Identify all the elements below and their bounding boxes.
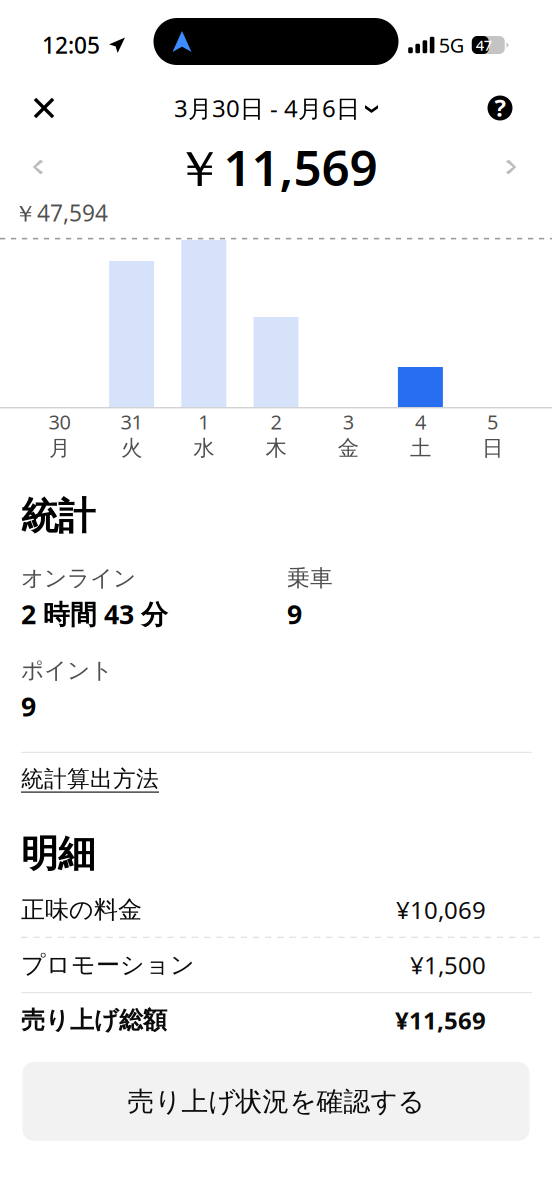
button[interactable]: 売り上げ状況を確認する [22, 1062, 529, 1141]
staticText: 乗車 [287, 564, 333, 592]
button[interactable]: Previous week [16, 145, 60, 189]
staticText: 統計 [21, 493, 95, 539]
staticText: 土 [410, 435, 431, 461]
staticText: 金 [338, 435, 359, 461]
staticText: ポイント [21, 656, 113, 684]
staticText: 売り上げ総額 [21, 1005, 167, 1035]
button[interactable]: Next week [492, 145, 536, 189]
staticText: 4 [415, 408, 426, 435]
staticText: 2 [270, 408, 281, 435]
button[interactable]: 3月30日 - 4月6日 [174, 86, 378, 130]
staticText: 売り上げ状況を確認する [127, 1085, 424, 1118]
staticText: 47 [476, 35, 492, 55]
staticText: 統計算出方法 [21, 765, 159, 793]
staticText: 3月30日 - 4月6日 [174, 92, 360, 124]
staticText: 日 [482, 435, 503, 461]
staticText: ￥11,569 [174, 134, 377, 200]
staticText: ¥10,069 [396, 894, 486, 926]
staticText: ¥1,500 [410, 949, 486, 981]
staticText: 5G [439, 32, 465, 58]
staticText: 30 [48, 408, 70, 435]
button[interactable]: 統計算出方法 [21, 753, 159, 797]
staticText: 正味の料金 [21, 895, 142, 924]
staticText: 3 [343, 408, 354, 435]
staticText: 明細 [21, 831, 95, 877]
staticText: 31 [121, 408, 143, 435]
staticText: 9 [21, 688, 36, 724]
button[interactable]: Help [478, 86, 522, 130]
staticText: 5 [487, 408, 498, 435]
button[interactable]: プロモーション [0, 938, 552, 992]
staticText: プロモーション [21, 950, 195, 980]
staticText: 1 [198, 408, 209, 435]
staticText: ? [494, 92, 505, 123]
staticText: 9 [287, 596, 302, 631]
button[interactable]: Close [22, 86, 66, 130]
staticText: 水 [193, 435, 214, 461]
staticText: 木 [265, 435, 286, 461]
staticText: 月 [49, 435, 70, 461]
staticText: ¥11,569 [395, 1004, 486, 1036]
staticText: 2 時間 43 分 [21, 596, 168, 631]
staticText: 12:05 [42, 30, 100, 60]
staticText: ￥47,594 [14, 198, 108, 228]
button[interactable]: 売り上げ総額 [0, 993, 552, 1047]
staticText: 火 [121, 435, 142, 461]
button[interactable]: 正味の料金 [0, 883, 552, 937]
staticText: オンライン [21, 564, 136, 592]
